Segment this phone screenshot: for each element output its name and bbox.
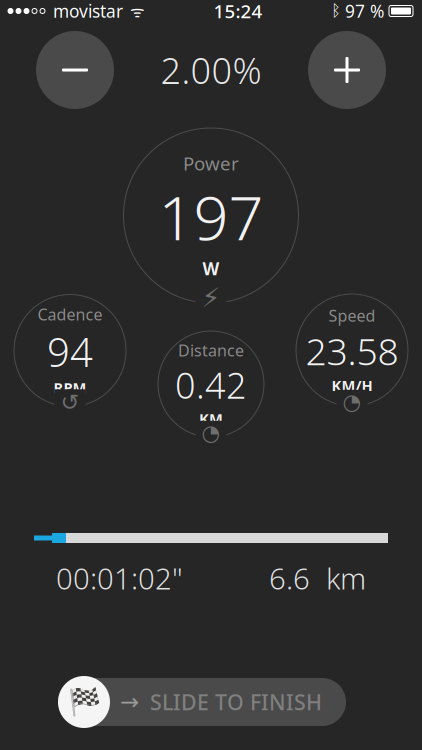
staticText: ᯤ — [126, 0, 145, 22]
staticText: 94 — [47, 325, 93, 378]
staticText: 23.58 — [305, 326, 398, 376]
staticText: Power — [183, 151, 239, 176]
staticText: 🏁 — [67, 687, 100, 717]
staticText: ᛒ — [331, 3, 341, 19]
staticText: ◔ — [342, 390, 361, 414]
staticText: Distance — [178, 340, 244, 361]
staticText: ⚡︎ — [201, 283, 220, 313]
staticText: 197 — [158, 176, 263, 257]
staticText: RPM — [53, 378, 86, 397]
staticText: ◔ — [201, 421, 220, 445]
staticText: 97 % — [345, 0, 384, 22]
button[interactable]: Increase — [308, 31, 386, 109]
staticText: SLIDE TO FINISH — [150, 688, 322, 716]
staticText: 2.00% — [160, 46, 261, 94]
button[interactable]: → — [58, 676, 364, 728]
staticText: KM — [199, 409, 223, 428]
staticText: ↺ — [60, 389, 79, 415]
staticText: → — [120, 689, 139, 715]
staticText: W — [202, 257, 219, 280]
staticText: KM/H — [331, 376, 372, 395]
staticText: Cadence — [37, 304, 102, 325]
staticText: Speed — [328, 305, 375, 326]
staticText: 6.6 km — [269, 558, 366, 597]
staticText: 00:01:02" — [56, 558, 183, 597]
staticText: 15:24 — [213, 0, 262, 23]
staticText: 0.42 — [175, 361, 247, 409]
button[interactable]: Decrease — [36, 31, 114, 109]
staticText: movistar — [48, 0, 123, 22]
